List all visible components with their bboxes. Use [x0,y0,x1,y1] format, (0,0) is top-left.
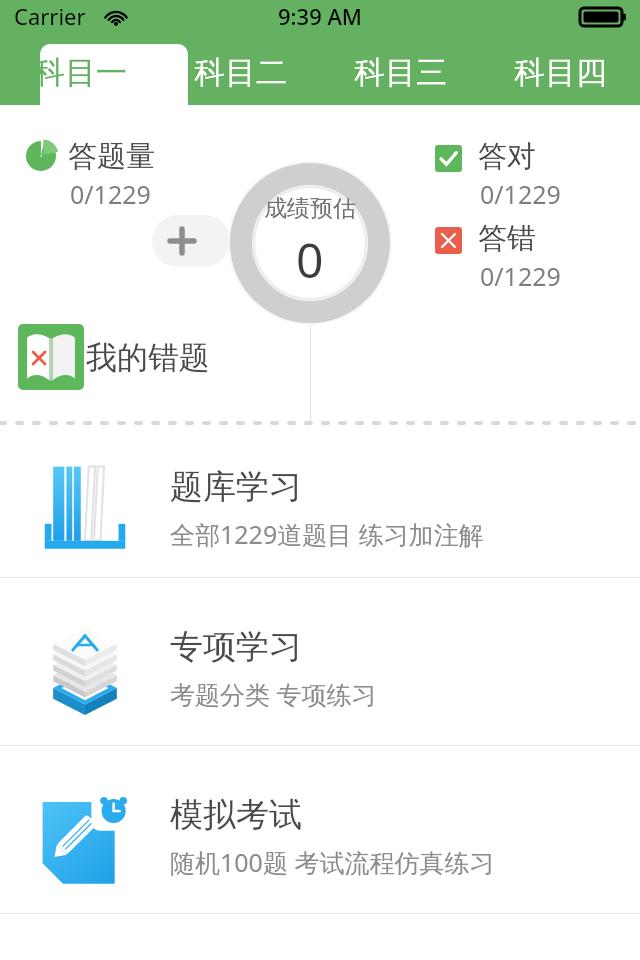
staticText: 题库学习 [170,466,302,508]
button[interactable] [26,141,56,171]
staticText: 答题量 [68,138,155,175]
staticText: 0/1229 [480,259,561,293]
button[interactable]: Wrong [435,227,462,254]
button[interactable]: 科目四 [480,44,640,105]
button[interactable]: Correct [435,145,462,172]
staticText: 0/1229 [70,177,151,211]
staticText: 成绩预估 [264,194,356,223]
staticText: 9:39 AM [278,1,363,31]
staticText: Carrier [14,1,86,31]
button[interactable]: 科目一 [0,44,160,105]
staticText: 全部1229道题目 练习加注解 [170,517,484,551]
button[interactable]: 题库学习 [0,440,640,577]
button[interactable]: 成绩预估 [228,161,392,325]
staticText: 答错 [478,220,536,257]
staticText: 科目四 [514,53,607,92]
staticText: 科目一 [34,53,127,92]
staticText: 科目二 [194,53,287,92]
staticText: 答对 [478,138,536,175]
staticText: 0/1229 [480,177,561,211]
button[interactable]: 科目二 [160,44,320,105]
staticText: 考题分类 专项练习 [170,677,377,711]
staticText: 专项学习 [170,626,302,668]
button[interactable]: 我的错题 [18,323,208,391]
staticText: 随机100题 考试流程仿真练习 [170,845,495,879]
button[interactable]: 模拟考试 [0,768,640,905]
button[interactable]: Add [152,215,230,267]
button[interactable]: 专项学习 [0,600,640,737]
staticText: 模拟考试 [170,794,302,836]
button[interactable]: 科目三 [320,44,480,105]
staticText: 0 [296,227,324,292]
staticText: 我的错题 [86,338,210,377]
staticText: 科目三 [354,53,447,92]
